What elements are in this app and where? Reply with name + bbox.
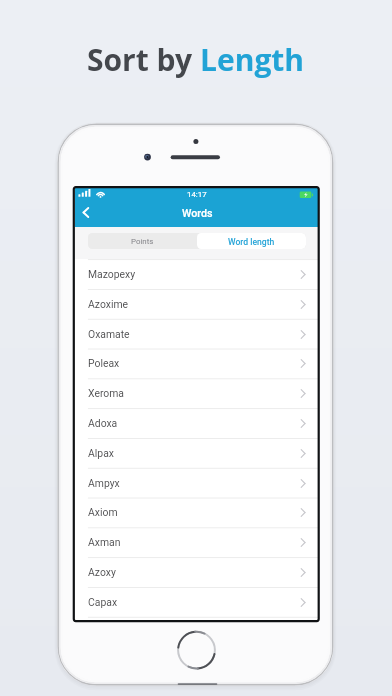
staticText: Azoxime (88, 298, 129, 310)
button[interactable]: Back (75, 201, 95, 227)
button[interactable]: Mazopexy (75, 260, 318, 289)
staticText: Words (182, 207, 213, 220)
button[interactable]: Azoxime (75, 290, 318, 319)
staticText: Points (131, 237, 154, 246)
staticText: Adoxa (88, 417, 118, 429)
staticText: Poleax (88, 357, 120, 369)
staticText: Mazopexy (88, 268, 136, 280)
staticText: Axman (88, 536, 121, 548)
staticText: Xeroma (88, 387, 125, 399)
button[interactable]: Axman (75, 528, 318, 557)
button[interactable]: Axiom (75, 498, 318, 527)
button[interactable]: Alpax (75, 439, 318, 468)
button[interactable]: Adoxa (75, 409, 318, 438)
staticText: Capax (88, 596, 118, 608)
button[interactable]: Oxamate (75, 320, 318, 349)
button[interactable]: Word length (197, 233, 306, 249)
staticText: Alpax (88, 447, 114, 459)
button[interactable]: Capax (75, 588, 318, 617)
button[interactable]: Poleax (75, 349, 318, 378)
staticText: Ampyx (88, 477, 120, 489)
button[interactable]: Ampyx (75, 469, 318, 498)
staticText: Sort by (87, 39, 200, 80)
staticText: Axiom (88, 506, 118, 518)
staticText: Azoxy (88, 566, 116, 578)
staticText: 14:17 (187, 190, 207, 199)
button[interactable]: Azoxy (75, 558, 318, 587)
staticText: Length (200, 39, 305, 80)
button[interactable]: Points (88, 233, 197, 249)
button[interactable]: Xeroma (75, 379, 318, 408)
staticText: Oxamate (88, 328, 130, 340)
staticText: Word length (228, 237, 275, 247)
